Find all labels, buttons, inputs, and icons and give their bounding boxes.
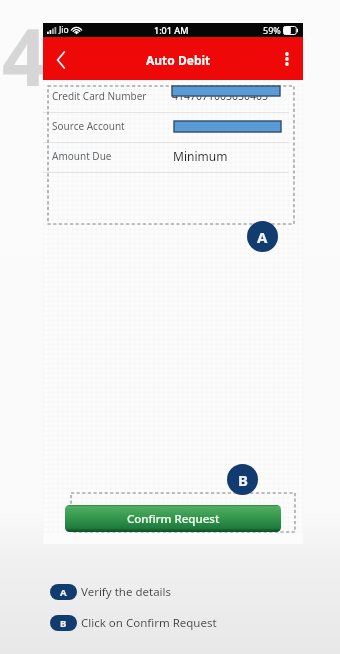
staticText: Verify the details bbox=[81, 584, 172, 600]
staticText: Click on Confirm Request bbox=[81, 615, 217, 631]
staticText: Credit Card Number bbox=[52, 89, 147, 103]
staticText: A bbox=[60, 586, 67, 599]
button[interactable]: Confirm Request bbox=[65, 505, 281, 532]
staticText: B bbox=[60, 617, 67, 630]
staticText: 4 bbox=[2, 3, 47, 109]
staticText: Auto Debit bbox=[146, 52, 211, 68]
staticText: 1:01 AM bbox=[154, 24, 189, 36]
button[interactable]: A bbox=[247, 221, 278, 252]
button[interactable]: A bbox=[50, 584, 172, 600]
staticText: 59% bbox=[263, 24, 281, 36]
staticText: B bbox=[238, 470, 248, 490]
button[interactable]: B bbox=[227, 464, 258, 495]
button[interactable]: Back bbox=[43, 37, 79, 80]
staticText: 4147071005050405 bbox=[172, 89, 269, 103]
staticText: A bbox=[257, 227, 268, 247]
button[interactable]: More options bbox=[271, 37, 303, 80]
button[interactable]: B bbox=[50, 615, 217, 631]
staticText: Minimum bbox=[173, 148, 228, 164]
staticText: Amount Due bbox=[52, 149, 112, 163]
staticText: Confirm Request bbox=[127, 511, 220, 527]
staticText: Source Account bbox=[52, 119, 125, 133]
staticText: Jio bbox=[59, 24, 69, 36]
